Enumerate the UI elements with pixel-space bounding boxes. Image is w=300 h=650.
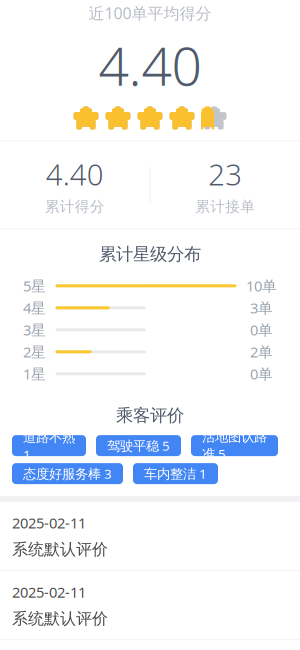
staticText: 系统默认评价 — [12, 609, 108, 628]
staticText: 2025-02-11 — [12, 513, 86, 533]
staticText: 4.40 — [98, 30, 201, 100]
staticText: 5星 — [23, 276, 46, 296]
staticText: 累计接单 — [195, 197, 255, 215]
staticText: 累计星级分布 — [99, 243, 201, 265]
staticText: 乘客评价 — [116, 405, 184, 426]
staticText: 活地图认路准 5 — [202, 429, 267, 463]
staticText: 23 — [208, 155, 242, 194]
staticText: 3单 — [250, 298, 273, 318]
button[interactable]: 车内整洁 1 — [133, 463, 218, 484]
staticText: 2025-02-11 — [12, 582, 86, 602]
staticText: 2单 — [250, 342, 273, 362]
staticText: 道路不熟 1 — [23, 428, 75, 463]
staticText: 态度好服务棒 3 — [23, 465, 112, 482]
staticText: 3星 — [23, 320, 46, 340]
button[interactable]: 道路不熟 1 — [12, 435, 86, 456]
staticText: 0单 — [250, 320, 273, 340]
button[interactable]: 态度好服务棒 3 — [12, 463, 123, 484]
staticText: 4.40 — [46, 155, 104, 194]
staticText: 车内整洁 1 — [144, 465, 207, 482]
staticText: 1星 — [23, 364, 46, 384]
staticText: 驾驶平稳 5 — [107, 437, 170, 454]
staticText: 4星 — [23, 298, 46, 318]
staticText: 累计得分 — [45, 197, 105, 215]
button[interactable]: 驾驶平稳 5 — [96, 435, 181, 456]
staticText: 2星 — [23, 342, 46, 362]
staticText: 系统默认评价 — [12, 540, 108, 559]
button[interactable]: 活地图认路准 5 — [191, 435, 278, 456]
staticText: 10单 — [246, 276, 277, 296]
staticText: 0单 — [250, 364, 273, 384]
staticText: 近100单平均得分 — [88, 2, 211, 24]
